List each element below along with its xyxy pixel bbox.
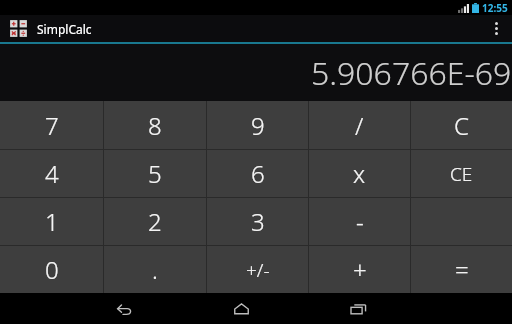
button[interactable]: . bbox=[104, 246, 206, 293]
button[interactable]: / bbox=[309, 101, 410, 149]
button[interactable]: Back bbox=[107, 293, 141, 324]
staticText: = bbox=[455, 253, 469, 286]
staticText: 9 bbox=[251, 109, 265, 142]
staticText: - bbox=[356, 205, 364, 238]
button[interactable]: Recent apps bbox=[341, 293, 375, 324]
staticText: 12:55 bbox=[482, 1, 508, 15]
staticText: / bbox=[355, 109, 364, 142]
button[interactable]: 4 bbox=[0, 150, 103, 197]
staticText: x bbox=[353, 157, 366, 190]
staticText: 8 bbox=[148, 109, 162, 142]
button[interactable]: 6 bbox=[207, 150, 308, 197]
staticText: 0 bbox=[45, 253, 59, 286]
staticText: +/- bbox=[246, 257, 270, 283]
staticText: 5 bbox=[148, 157, 162, 190]
staticText: 1 bbox=[45, 205, 59, 238]
staticText: 2 bbox=[148, 205, 162, 238]
button[interactable]: 1 bbox=[0, 198, 103, 245]
staticText: 7 bbox=[45, 109, 59, 142]
button[interactable]: 2 bbox=[104, 198, 206, 245]
staticText: C bbox=[454, 109, 469, 142]
button[interactable]: 3 bbox=[207, 198, 308, 245]
staticText: 6 bbox=[251, 157, 265, 190]
staticText: 5.906766E-69 bbox=[311, 51, 512, 95]
button[interactable]: 0 bbox=[0, 246, 103, 293]
button[interactable]: C bbox=[411, 101, 512, 149]
button[interactable]: = bbox=[411, 246, 512, 293]
button[interactable]: + bbox=[309, 246, 410, 293]
staticText: 4 bbox=[45, 157, 59, 190]
staticText: CE bbox=[450, 161, 473, 187]
staticText: + bbox=[353, 253, 367, 286]
staticText: SimplCalc bbox=[37, 21, 92, 37]
button[interactable]: 9 bbox=[207, 101, 308, 149]
button[interactable]: 5 bbox=[104, 150, 206, 197]
button[interactable]: Home bbox=[224, 293, 258, 324]
button[interactable]: x bbox=[309, 150, 410, 197]
button[interactable]: 7 bbox=[0, 101, 103, 149]
staticText: 3 bbox=[251, 205, 265, 238]
staticText: . bbox=[152, 253, 158, 286]
button[interactable]: More options bbox=[484, 15, 508, 42]
button[interactable]: - bbox=[309, 198, 410, 245]
button[interactable]: 8 bbox=[104, 101, 206, 149]
button[interactable]: +/- bbox=[207, 246, 308, 293]
button[interactable]: CE bbox=[411, 150, 512, 197]
